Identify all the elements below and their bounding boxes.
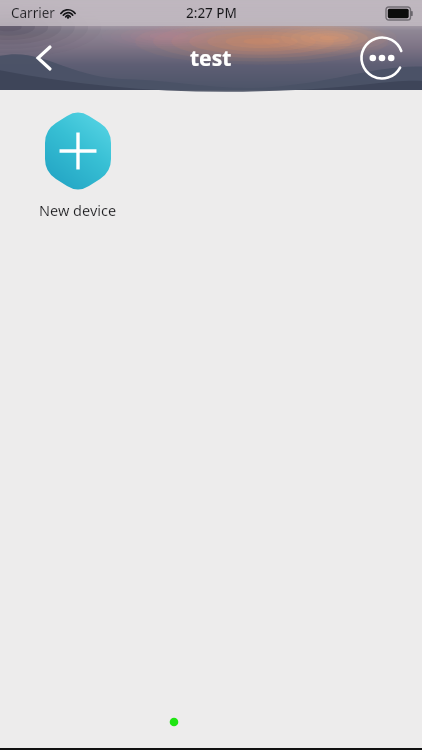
staticText: Carrier	[11, 4, 55, 22]
staticText: test	[190, 44, 232, 73]
staticText: New device	[39, 200, 117, 220]
staticText: 2:27 PM	[186, 4, 237, 22]
button[interactable]: More options	[358, 34, 406, 82]
button[interactable]: New device	[29, 109, 127, 220]
button[interactable]: Back	[22, 36, 66, 80]
